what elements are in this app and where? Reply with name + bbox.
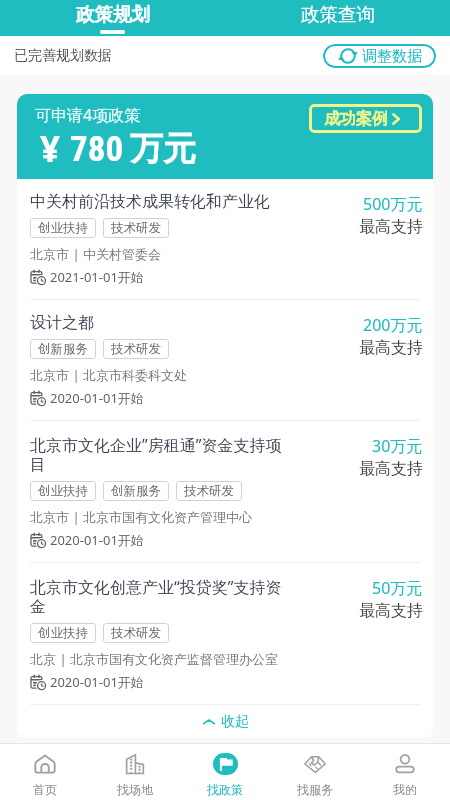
- staticText: 创业扶持: [38, 625, 88, 641]
- staticText: 2021-01-01开始: [50, 268, 144, 286]
- button[interactable]: 找场地: [90, 744, 180, 800]
- button[interactable]: 中关村前沿技术成果转化和产业化: [17, 179, 433, 299]
- staticText: 我的: [393, 782, 417, 797]
- staticText: 2020-01-01开始: [50, 531, 144, 549]
- button[interactable]: 找政策: [180, 744, 270, 800]
- button[interactable]: 北京市文化创意产业“投贷奖”支持资金: [17, 563, 433, 704]
- staticText: 50万元: [372, 577, 423, 599]
- staticText: 北京市文化创意产业“投贷奖”支持资金: [30, 576, 286, 617]
- staticText: 2020-01-01开始: [50, 673, 144, 691]
- button[interactable]: 调整数据: [323, 44, 436, 68]
- staticText: 最高支持: [359, 601, 423, 621]
- staticText: 收起: [221, 713, 249, 731]
- staticText: 最高支持: [359, 338, 423, 358]
- button[interactable]: 政策查询: [225, 0, 450, 36]
- staticText: 技术研发: [111, 625, 161, 641]
- staticText: 780: [70, 129, 124, 170]
- staticText: 创业扶持: [38, 220, 88, 236]
- staticText: 政策查询: [301, 3, 375, 26]
- staticText: 最高支持: [359, 217, 423, 237]
- staticText: 找服务: [297, 782, 333, 797]
- staticText: 调整数据: [362, 47, 422, 66]
- staticText: 技术研发: [111, 220, 161, 236]
- staticText: 创新服务: [111, 483, 161, 499]
- staticText: 中关村前沿技术成果转化和产业化: [30, 192, 270, 212]
- button[interactable]: 政策规划: [0, 0, 225, 36]
- staticText: 政策规划: [76, 3, 150, 26]
- staticText: 北京 | 北京市国有文化资产监督管理办公室: [30, 650, 278, 668]
- staticText: 已完善规划数据: [14, 47, 112, 65]
- staticText: 创业扶持: [38, 483, 88, 499]
- staticText: 创新服务: [38, 341, 88, 357]
- staticText: 2020-01-01开始: [50, 389, 144, 407]
- staticText: 找场地: [117, 782, 153, 797]
- staticText: 30万元: [372, 435, 423, 457]
- staticText: 技术研发: [184, 483, 234, 499]
- staticText: 200万元: [363, 314, 423, 336]
- staticText: 北京市 | 北京市科委科文处: [30, 366, 187, 384]
- staticText: 最高支持: [359, 459, 423, 479]
- staticText: 找政策: [207, 782, 243, 797]
- staticText: ¥: [40, 125, 61, 173]
- button[interactable]: 北京市文化企业”房租通”资金支持项目: [17, 421, 433, 562]
- button[interactable]: 成功案例: [309, 104, 422, 133]
- staticText: 设计之都: [30, 313, 94, 333]
- button[interactable]: 设计之都: [17, 300, 433, 420]
- staticText: 北京市 | 北京市国有文化资产管理中心: [30, 508, 252, 526]
- button[interactable]: 我的: [360, 744, 450, 800]
- staticText: 技术研发: [111, 341, 161, 357]
- staticText: 成功案例: [324, 109, 388, 129]
- staticText: 首页: [33, 782, 57, 797]
- staticText: 万元: [130, 128, 196, 170]
- staticText: 北京市文化企业”房租通”资金支持项目: [30, 434, 286, 475]
- staticText: 500万元: [363, 193, 423, 215]
- button[interactable]: 找服务: [270, 744, 360, 800]
- button[interactable]: 收起: [17, 705, 433, 738]
- staticText: 可申请4项政策: [35, 104, 141, 126]
- staticText: 北京市 | 中关村管委会: [30, 245, 161, 263]
- button[interactable]: 首页: [0, 744, 90, 800]
